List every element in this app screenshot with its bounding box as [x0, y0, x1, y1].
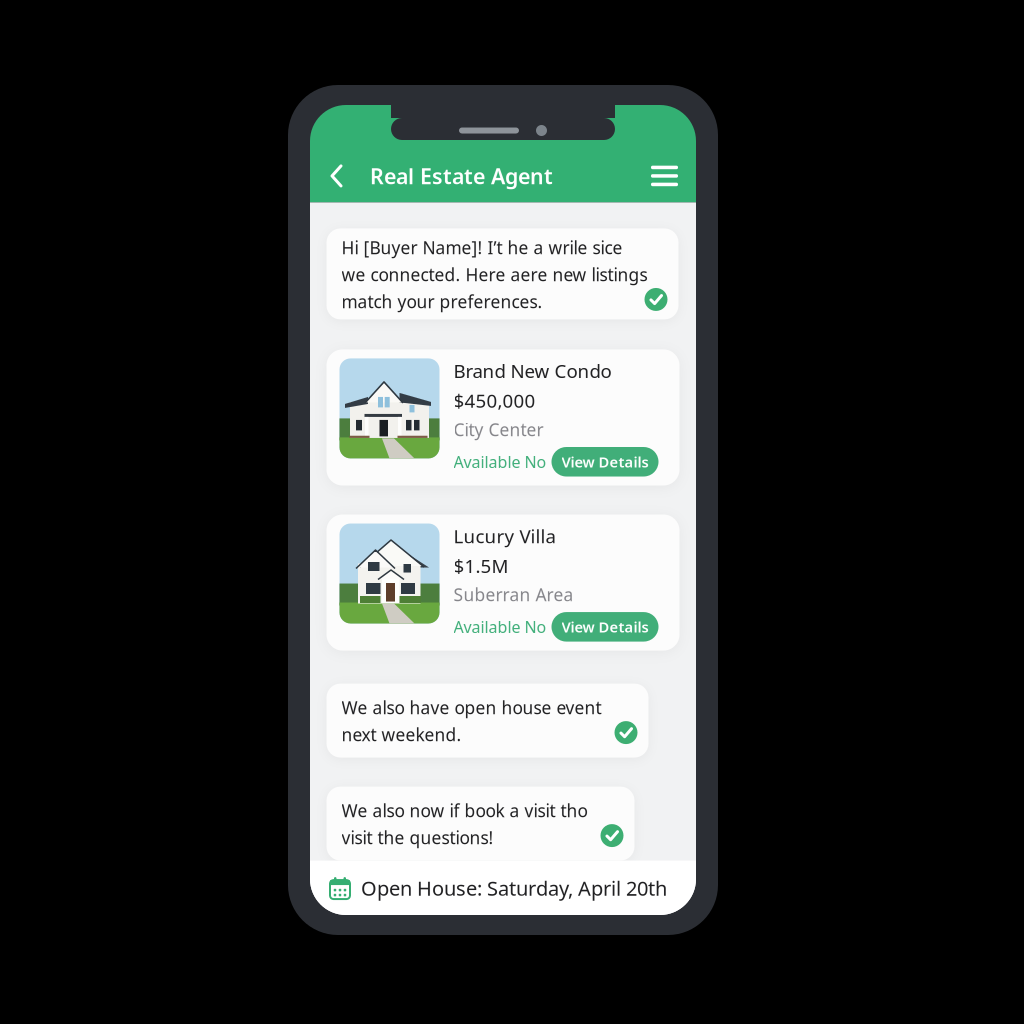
- staticText: visit the questions!: [341, 826, 493, 849]
- staticText: next weekend.: [341, 723, 461, 746]
- button[interactable]: Back: [310, 163, 370, 189]
- staticText: $450,000: [453, 388, 535, 413]
- staticText: match your preferences.: [341, 290, 542, 313]
- staticText: Suberran Area: [453, 583, 573, 606]
- staticText: Lucury Villa: [453, 523, 555, 548]
- staticText: View Details: [561, 452, 648, 471]
- button[interactable]: View Details: [551, 447, 658, 476]
- button[interactable]: Open House: Saturday, April 20th: [307, 861, 699, 916]
- staticText: Available No: [453, 451, 546, 472]
- staticText: We also have open house event: [341, 696, 601, 719]
- staticText: City Center: [453, 418, 543, 441]
- staticText: Hi [Buyer Name]! I’t he a wrile sice: [341, 236, 622, 259]
- staticText: Available No: [453, 616, 546, 637]
- button[interactable]: Menu: [641, 156, 696, 196]
- staticText: View Details: [561, 617, 648, 637]
- staticText: We also now if book a visit tho: [341, 799, 587, 822]
- staticText: Brand New Condo: [453, 358, 611, 383]
- button[interactable]: View Details: [551, 612, 658, 642]
- staticText: Real Estate Agent: [370, 162, 553, 190]
- staticText: Open House: Saturday, April 20th: [361, 875, 667, 901]
- staticText: we connected. Here aere new listings: [341, 263, 647, 286]
- staticText: $1.5M: [453, 553, 508, 578]
